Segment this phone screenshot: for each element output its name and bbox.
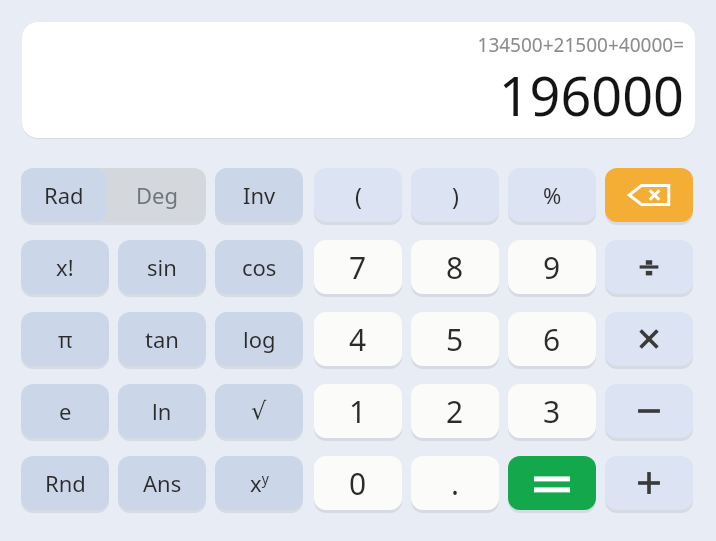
- button[interactable]: 0: [314, 456, 402, 510]
- button[interactable]: 5: [411, 312, 499, 366]
- staticText: xy: [250, 468, 269, 498]
- staticText: %: [543, 180, 562, 210]
- staticText: 196000: [498, 58, 684, 132]
- button[interactable]: 7: [314, 240, 402, 294]
- button[interactable]: sin: [118, 240, 206, 294]
- button[interactable]: log: [215, 312, 303, 366]
- staticText: 0: [349, 463, 367, 504]
- staticText: ): [452, 180, 459, 211]
- staticText: x!: [56, 252, 74, 282]
- button[interactable]: %: [508, 168, 596, 222]
- staticText: 7: [349, 247, 367, 288]
- button[interactable]: 8: [411, 240, 499, 294]
- button[interactable]: Deg: [107, 168, 206, 222]
- staticText: tan: [145, 324, 179, 354]
- staticText: π: [58, 324, 73, 354]
- button[interactable]: Minus: [605, 384, 693, 438]
- button[interactable]: Rad: [21, 168, 107, 222]
- staticText: 2: [446, 391, 464, 432]
- button[interactable]: 4: [314, 312, 402, 366]
- staticText: Deg: [136, 180, 178, 210]
- button[interactable]: Backspace: [605, 168, 693, 222]
- button[interactable]: √: [215, 384, 303, 438]
- button[interactable]: 1: [314, 384, 402, 438]
- button[interactable]: x!: [21, 240, 109, 294]
- button[interactable]: Rnd: [21, 456, 109, 510]
- button[interactable]: 6: [508, 312, 596, 366]
- button[interactable]: (: [314, 168, 402, 222]
- button[interactable]: 3: [508, 384, 596, 438]
- button[interactable]: 2: [411, 384, 499, 438]
- button[interactable]: e: [21, 384, 109, 438]
- staticText: log: [243, 324, 276, 354]
- button[interactable]: Equals: [508, 456, 596, 510]
- staticText: e: [59, 396, 72, 426]
- button[interactable]: π: [21, 312, 109, 366]
- staticText: 8: [446, 247, 464, 288]
- staticText: 134500+21500+40000=: [477, 32, 684, 58]
- staticText: 9: [543, 247, 561, 288]
- button[interactable]: tan: [118, 312, 206, 366]
- staticText: 1: [349, 391, 367, 432]
- button[interactable]: 9: [508, 240, 596, 294]
- button[interactable]: Divide: [605, 240, 693, 294]
- staticText: (: [355, 180, 362, 211]
- staticText: 3: [543, 391, 561, 432]
- button[interactable]: Multiply: [605, 312, 693, 366]
- staticText: ln: [152, 396, 172, 426]
- staticText: .: [451, 463, 460, 504]
- staticText: Rad: [44, 180, 84, 210]
- staticText: cos: [242, 252, 277, 282]
- button[interactable]: ln: [118, 384, 206, 438]
- staticText: 6: [543, 319, 561, 360]
- button[interactable]: Ans: [118, 456, 206, 510]
- staticText: sin: [147, 252, 177, 282]
- button[interactable]: Plus: [605, 456, 693, 510]
- button[interactable]: Inv: [215, 168, 303, 222]
- staticText: Inv: [243, 180, 276, 210]
- button[interactable]: .: [411, 456, 499, 510]
- staticText: 5: [446, 319, 464, 360]
- button[interactable]: cos: [215, 240, 303, 294]
- staticText: Ans: [143, 468, 182, 498]
- staticText: √: [251, 397, 267, 425]
- button[interactable]: ): [411, 168, 499, 222]
- button[interactable]: xy: [215, 456, 303, 510]
- staticText: Rnd: [45, 468, 86, 498]
- staticText: 4: [349, 319, 367, 360]
